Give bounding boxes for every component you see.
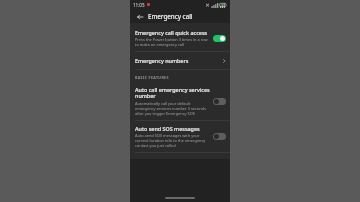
button[interactable]: Back: [134, 11, 145, 22]
staticText: BASIC FEATURES: [135, 75, 169, 80]
button[interactable]: Toggle on: [213, 35, 226, 42]
button[interactable]: Toggle off: [213, 98, 226, 105]
staticText: Emergency call quick access: [135, 29, 208, 36]
button[interactable]: Auto call emergency services number: [130, 83, 230, 120]
staticText: Auto-send SOS messages with your current…: [135, 133, 210, 148]
staticText: Auto send SOS messages: [135, 125, 200, 132]
staticText: Auto call emergency services number: [135, 86, 210, 100]
button[interactable]: Auto send SOS messages: [130, 121, 230, 152]
button[interactable]: Toggle off: [213, 133, 226, 140]
staticText: Emergency call: [148, 12, 193, 20]
button[interactable]: Emergency call quick access: [130, 25, 230, 51]
staticText: Press the Power button 3 times in a row …: [135, 37, 210, 47]
staticText: Emergency numbers: [135, 57, 222, 64]
staticText: 11:05: [133, 2, 145, 8]
staticText: Automatically call your default emergenc…: [135, 101, 210, 116]
button[interactable]: Emergency numbers: [130, 52, 230, 69]
